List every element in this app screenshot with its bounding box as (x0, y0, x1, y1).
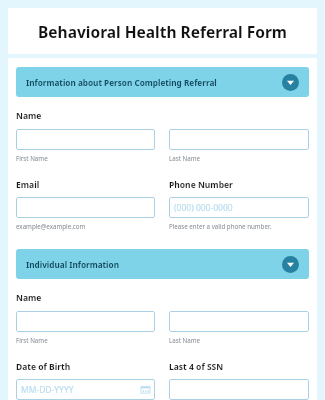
button[interactable] (16, 197, 155, 218)
button[interactable] (16, 129, 155, 150)
staticText: First Name (16, 154, 48, 162)
button[interactable]: Collapse section (282, 74, 299, 91)
staticText: example@example.com (16, 222, 86, 230)
button[interactable]: (000) 000-0000 (169, 197, 309, 218)
staticText: Last Name (169, 154, 200, 162)
staticText: Name (16, 292, 42, 304)
staticText: Email (16, 179, 40, 191)
staticText: Please enter a valid phone number. (169, 222, 272, 230)
button[interactable] (169, 129, 309, 150)
button[interactable] (16, 311, 155, 332)
staticText: First Name (16, 336, 48, 344)
button[interactable]: MM-DD-YYYY (16, 379, 155, 400)
staticText: Last 4 of SSN (169, 361, 224, 373)
staticText: Last Name (169, 336, 200, 344)
button[interactable]: Individual Information (16, 249, 309, 279)
staticText: Date of Birth (16, 361, 71, 373)
staticText: Name (16, 110, 42, 122)
staticText: Phone Number (169, 179, 233, 191)
staticText: Information about Person Completing Refe… (26, 77, 282, 88)
button[interactable] (169, 311, 309, 332)
staticText: MM-DD-YYYY (21, 384, 74, 396)
staticText: Individual Information (26, 259, 282, 270)
button[interactable]: Collapse section (282, 256, 299, 273)
button[interactable] (169, 379, 309, 400)
button[interactable]: Information about Person Completing Refe… (16, 67, 309, 97)
staticText: Behavioral Health Referral Form (38, 21, 287, 42)
staticText: (000) 000-0000 (174, 202, 233, 214)
